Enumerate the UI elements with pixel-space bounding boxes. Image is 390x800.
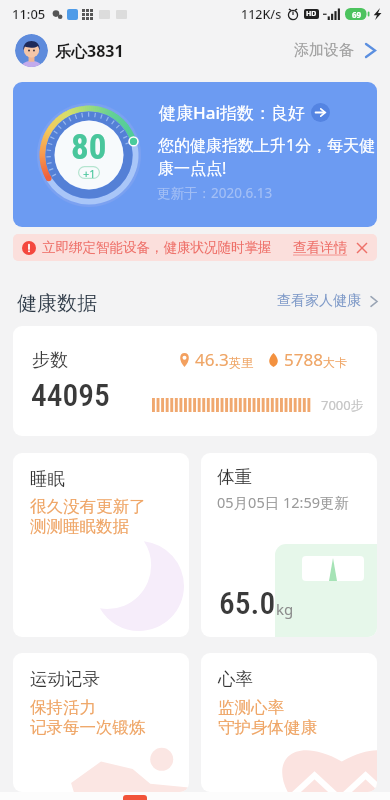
button[interactable]: 80: [13, 82, 377, 227]
staticText: 健康Hai指数：良好: [159, 101, 306, 124]
staticText: 5788: [284, 348, 323, 371]
staticText: 大卡: [323, 355, 347, 370]
staticText: 立即绑定智能设备，健康状况随时掌握: [42, 239, 272, 256]
button[interactable]: 查看详情: [293, 239, 347, 256]
staticText: 睡眠: [30, 468, 65, 490]
staticText: +1: [83, 166, 96, 179]
staticText: 46.3: [195, 348, 229, 371]
button[interactable]: 心率: [201, 653, 377, 792]
staticText: 69: [352, 9, 362, 20]
staticText: 很久没有更新了 测测睡眠数据: [30, 496, 146, 537]
staticText: 05月05日 12:59更新: [217, 492, 350, 512]
button[interactable]: 立即绑定智能设备，健康状况随时掌握: [13, 234, 377, 261]
staticText: 查看家人健康: [277, 292, 361, 310]
staticText: 11:05: [12, 5, 46, 23]
button[interactable]: 步数: [13, 326, 377, 436]
staticText: 您的健康指数上升1分，每天健 康一点点!: [158, 134, 376, 179]
button[interactable]: 运动记录: [13, 653, 189, 792]
staticText: 80: [71, 127, 107, 168]
staticText: 添加设备: [294, 41, 354, 60]
staticText: 保持活力 记录每一次锻炼: [30, 697, 146, 738]
button[interactable]: 添加设备: [294, 41, 378, 60]
staticText: 112K/s: [241, 6, 282, 23]
button[interactable]: 查看家人健康: [277, 292, 379, 310]
staticText: 英里: [229, 355, 253, 370]
button[interactable]: Profile: [15, 34, 48, 67]
staticText: 监测心率 守护身体健康: [218, 697, 317, 738]
staticText: 更新于：2020.6.13: [157, 184, 273, 202]
staticText: 体重: [217, 466, 252, 488]
staticText: 运动记录: [30, 668, 100, 690]
button[interactable]: 睡眠: [13, 453, 189, 637]
staticText: 步数: [32, 349, 68, 372]
staticText: 心率: [218, 668, 253, 690]
button[interactable]: Details: [311, 103, 330, 122]
staticText: 乐心3831: [55, 40, 124, 62]
staticText: 7000步: [321, 396, 364, 414]
staticText: HD: [306, 9, 317, 19]
staticText: 健康数据: [17, 291, 97, 316]
button[interactable]: 体重: [201, 453, 377, 637]
staticText: kg: [276, 599, 294, 619]
button[interactable]: Add: [123, 795, 147, 800]
staticText: 65.0: [219, 585, 276, 622]
button[interactable]: Close: [356, 242, 368, 254]
staticText: 44095: [31, 377, 110, 414]
